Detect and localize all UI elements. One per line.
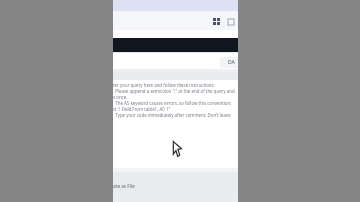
staticText: ter your query here and follow these ins… [113,82,238,88]
staticText: s once. [113,94,238,100]
button[interactable]: ate as File [113,183,135,189]
button[interactable]: DA [220,57,242,68]
button[interactable]: Grid view [210,15,222,27]
button[interactable]: More options [225,16,236,27]
other: Pointer [172,141,183,157]
staticText: Please append a semicolon ";" at the end… [113,88,238,94]
staticText: DA [228,59,235,66]
staticText: ct 1 Field From table1, A0 1" [113,106,238,112]
staticText: Type your code immediately after comment… [113,112,238,118]
staticText: The AS keyword causes errors, so follow … [113,100,238,106]
